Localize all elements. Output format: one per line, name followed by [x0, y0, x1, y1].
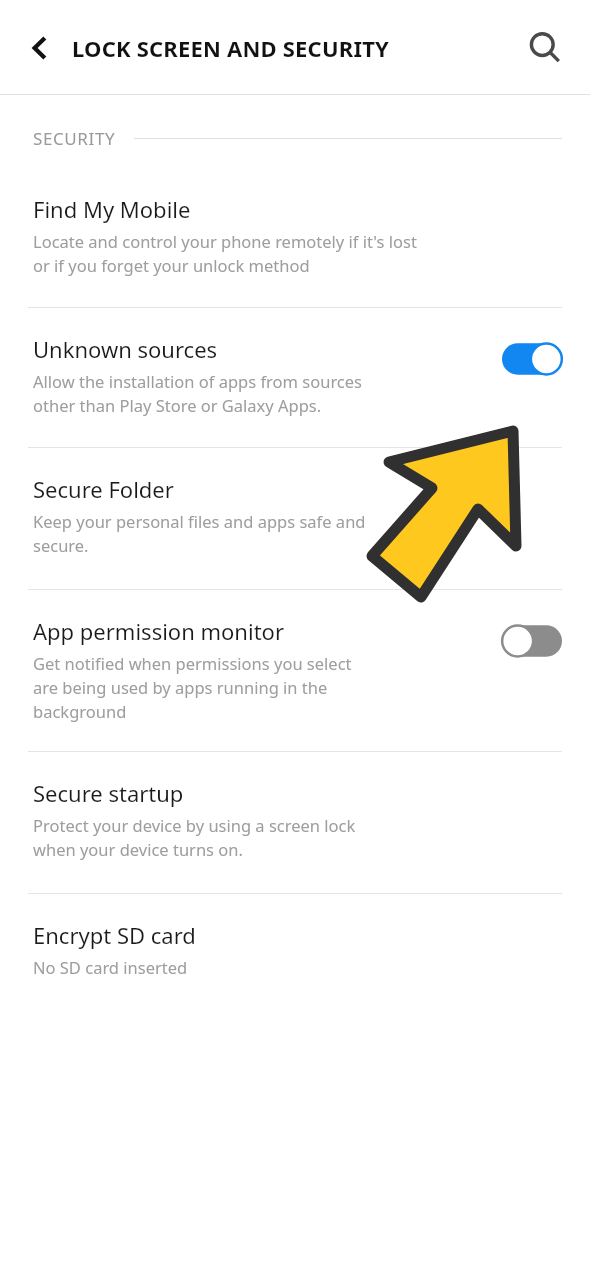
- button[interactable]: Secure startup: [0, 752, 590, 893]
- button[interactable]: Unknown sources: [0, 308, 590, 447]
- staticText: Unknown sources: [33, 334, 218, 364]
- staticText: Keep your personal files and apps safe a…: [33, 510, 366, 557]
- button[interactable]: Secure Folder: [0, 448, 590, 589]
- button[interactable]: App permission monitor: [0, 590, 590, 751]
- staticText: SECURITY: [33, 127, 116, 150]
- staticText: App permission monitor: [33, 616, 284, 646]
- button[interactable]: Find My Mobile: [0, 194, 590, 307]
- staticText: LOCK SCREEN AND SECURITY: [72, 33, 518, 63]
- button[interactable]: Encrypt SD card: [0, 894, 590, 1008]
- button[interactable]: Toggle on: [502, 342, 562, 376]
- button[interactable]: Search: [518, 21, 572, 75]
- staticText: Encrypt SD card: [33, 920, 196, 950]
- button[interactable]: Toggle off: [502, 624, 562, 658]
- staticText: Get notified when permissions you select…: [33, 652, 352, 723]
- staticText: Protect your device by using a screen lo…: [33, 814, 356, 861]
- button[interactable]: Back: [14, 22, 66, 74]
- staticText: Secure startup: [33, 778, 184, 808]
- staticText: Find My Mobile: [33, 194, 191, 224]
- staticText: Secure Folder: [33, 474, 174, 504]
- staticText: Allow the installation of apps from sour…: [33, 370, 362, 417]
- staticText: No SD card inserted: [33, 956, 188, 978]
- staticText: Locate and control your phone remotely i…: [33, 230, 417, 277]
